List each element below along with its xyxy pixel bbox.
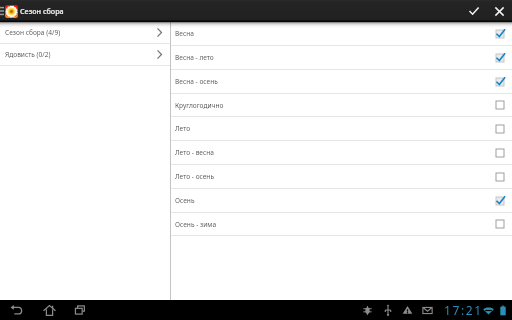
button[interactable]: Done xyxy=(461,0,486,22)
staticText: Осень xyxy=(175,196,195,205)
button[interactable]: Весна - осень xyxy=(171,70,512,94)
button[interactable]: Лето - осень xyxy=(171,165,512,189)
staticText: Весна - лето xyxy=(175,53,214,62)
staticText: 17:21 xyxy=(444,302,483,318)
button[interactable]: Лето xyxy=(171,117,512,141)
staticText: Лето - весна xyxy=(175,148,214,157)
button[interactable]: Back xyxy=(9,303,23,317)
button[interactable]: Home xyxy=(42,303,56,317)
button[interactable]: Ядовисть (0/2) xyxy=(0,44,170,66)
button[interactable]: Осень - зима xyxy=(171,213,512,236)
button[interactable]: Осень xyxy=(171,189,512,213)
staticText: Сезон сбора xyxy=(20,6,64,16)
button[interactable]: Лето - весна xyxy=(171,141,512,165)
staticText: Лето xyxy=(175,124,191,133)
staticText: Круглогодично xyxy=(175,101,224,110)
button[interactable]: Весна - лето xyxy=(171,46,512,70)
button[interactable]: Сезон сбора (4/9) xyxy=(0,22,170,44)
button[interactable]: Cancel xyxy=(486,0,512,22)
staticText: Сезон сбора (4/9) xyxy=(5,28,61,37)
staticText: Ядовисть (0/2) xyxy=(5,50,51,59)
staticText: Весна xyxy=(175,29,194,38)
staticText: Осень - зима xyxy=(175,220,217,229)
button[interactable]: Круглогодично xyxy=(171,94,512,117)
button[interactable]: Recents xyxy=(73,303,87,317)
staticText: Лето - осень xyxy=(175,172,215,181)
button[interactable]: Весна xyxy=(171,22,512,46)
staticText: Весна - осень xyxy=(175,77,218,86)
